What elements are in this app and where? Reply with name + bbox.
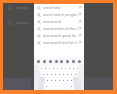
button[interactable] — [71, 65, 75, 71]
button[interactable] — [67, 65, 71, 71]
staticText: search text in progress — [43, 12, 77, 17]
button[interactable] — [59, 65, 63, 71]
staticText: new search query for this one — [43, 33, 77, 38]
button[interactable] — [39, 65, 43, 71]
button[interactable] — [69, 71, 73, 77]
button[interactable] — [43, 65, 47, 71]
button[interactable]: Search suggestion — [34, 4, 84, 11]
button[interactable] — [47, 65, 51, 71]
button[interactable]: Search suggestion — [34, 11, 84, 18]
button[interactable] — [73, 71, 77, 77]
button[interactable]: Search suggestion — [34, 32, 84, 39]
other: Search suggestion — [36, 19, 42, 25]
button[interactable] — [61, 71, 65, 77]
button[interactable]: Comma — [44, 83, 49, 90]
button[interactable] — [45, 77, 49, 83]
button[interactable] — [69, 77, 73, 83]
button[interactable] — [45, 71, 49, 77]
staticText: search text — [43, 5, 61, 10]
button[interactable] — [65, 77, 69, 83]
button[interactable]: Emoji — [78, 60, 81, 63]
button[interactable] — [53, 71, 57, 77]
button[interactable]: Emoji — [66, 60, 69, 63]
button[interactable] — [49, 71, 53, 77]
button[interactable]: Period — [69, 83, 74, 90]
other: Search suggestion — [36, 5, 42, 11]
button[interactable]: Search suggestion — [34, 25, 84, 32]
button[interactable]: Emoji — [72, 60, 75, 63]
button[interactable] — [65, 71, 69, 77]
other: Search suggestion — [36, 33, 42, 39]
other: Search suggestion — [36, 12, 42, 18]
button[interactable] — [75, 65, 79, 71]
button[interactable]: Emoji — [60, 60, 63, 63]
button[interactable]: Search suggestion — [34, 18, 84, 25]
button[interactable]: Emoji — [37, 60, 40, 63]
button[interactable] — [49, 77, 53, 83]
button[interactable] — [51, 65, 55, 71]
button[interactable]: Emoji — [43, 60, 46, 63]
button[interactable]: Emoji — [55, 60, 58, 63]
staticText: new searches of the query — [43, 26, 77, 31]
button[interactable] — [55, 65, 59, 71]
button[interactable]: Search suggestion — [34, 39, 84, 46]
button[interactable] — [61, 77, 65, 83]
button[interactable] — [41, 71, 45, 77]
button[interactable] — [63, 65, 67, 71]
staticText: new search — [43, 19, 61, 24]
other: Search suggestion — [36, 26, 42, 32]
staticText: new search text for results — [43, 40, 77, 45]
button[interactable] — [57, 71, 61, 77]
button[interactable] — [57, 77, 61, 83]
button[interactable] — [53, 77, 57, 83]
button[interactable]: Emoji — [49, 60, 52, 63]
other: Search suggestion — [36, 40, 42, 46]
